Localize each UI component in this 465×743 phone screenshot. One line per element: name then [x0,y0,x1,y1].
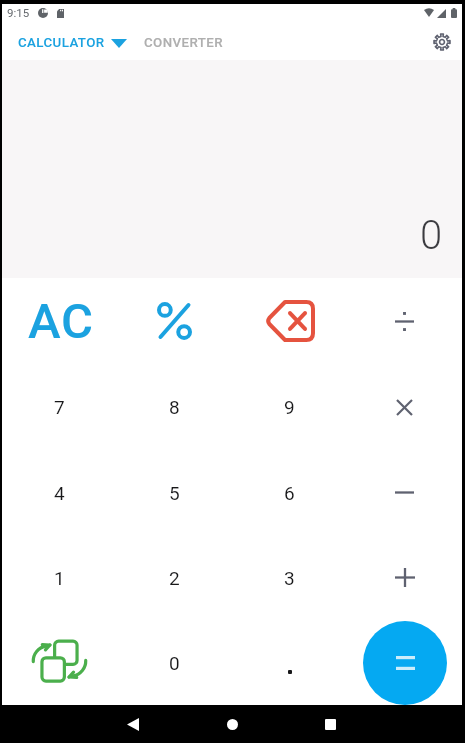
button[interactable]: 7 [2,364,117,450]
button[interactable]: 4 [2,450,117,535]
staticText: 7 [54,396,65,418]
button[interactable] [232,620,347,705]
staticText: 3 [284,567,295,589]
button[interactable]: 0 [117,620,232,705]
staticText: 0 [169,652,180,674]
button[interactable]: 6 [232,450,347,535]
button[interactable] [347,535,462,620]
button[interactable] [347,278,462,364]
staticText: 1 [54,567,65,589]
staticText: 9:15 [7,6,30,19]
button[interactable]: 5 [117,450,232,535]
button[interactable]: CALCULATOR [2,31,131,55]
staticText: 9 [284,396,295,418]
button[interactable]: 8 [117,364,232,450]
staticText: 2 [169,567,180,589]
button[interactable]: Equals [363,621,447,705]
staticText: 4 [54,482,65,504]
button[interactable]: Recents [307,705,353,743]
button[interactable]: Settings [425,25,459,59]
button[interactable] [347,450,462,535]
button[interactable]: CONVERTER [141,31,226,55]
button[interactable]: Home [209,705,255,743]
staticText: AC [28,293,95,350]
button[interactable]: 3 [232,535,347,620]
staticText: 0 [420,212,443,259]
button[interactable] [117,278,232,364]
button[interactable]: 2 [117,535,232,620]
staticText: 6 [284,482,295,504]
button[interactable] [2,620,117,705]
button[interactable]: Equals [347,620,462,705]
staticText: CONVERTER [144,35,223,51]
staticText: 5 [169,482,180,504]
button[interactable]: 1 [2,535,117,620]
button[interactable]: Back [110,705,156,743]
staticText: 8 [169,396,180,418]
button[interactable] [232,278,347,364]
button[interactable] [347,364,462,450]
button[interactable]: AC [2,278,117,364]
button[interactable]: 9 [232,364,347,450]
staticText: CALCULATOR [18,35,105,51]
